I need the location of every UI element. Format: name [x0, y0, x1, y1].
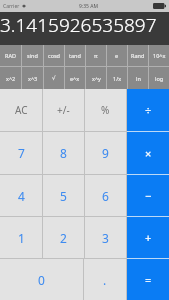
button[interactable]: Add [127, 217, 169, 258]
button[interactable]: % [85, 89, 126, 131]
staticText: e^x [70, 75, 80, 82]
button[interactable]: π [86, 45, 106, 66]
button[interactable]: x^y [86, 67, 106, 89]
staticText: − [145, 188, 152, 203]
staticText: √ [52, 75, 56, 81]
staticText: tand [69, 52, 81, 59]
staticText: 3.14159265358979 [0, 12, 166, 45]
staticText: ÷ [145, 103, 152, 118]
button[interactable]: Divide [127, 89, 169, 131]
button[interactable]: Subtract [127, 175, 169, 216]
button[interactable]: 2 [43, 217, 84, 258]
button[interactable]: 8 [43, 132, 84, 174]
staticText: 9 [102, 145, 109, 161]
button[interactable]: Multiply [127, 132, 169, 174]
button[interactable]: cosd [44, 45, 64, 66]
button[interactable]: log [149, 67, 169, 89]
staticText: 9:35 AM [79, 3, 99, 10]
staticText: RAD [5, 52, 16, 59]
button[interactable]: Rand [128, 45, 148, 66]
button[interactable]: 9 [85, 132, 126, 174]
button[interactable]: x^2 [0, 67, 21, 89]
staticText: 7 [18, 145, 25, 161]
button[interactable]: 4 [0, 175, 42, 216]
staticText: π [94, 52, 98, 59]
staticText: . [103, 272, 107, 288]
button[interactable]: 6 [85, 175, 126, 216]
staticText: sind [27, 52, 38, 59]
staticText: % [101, 103, 110, 117]
staticText: 8 [60, 145, 67, 161]
staticText: 1 [18, 230, 25, 246]
staticText: 1/x [113, 75, 122, 82]
staticText: x^3 [28, 75, 38, 82]
button[interactable]: √ [44, 67, 64, 89]
button[interactable]: 1/x [107, 67, 127, 89]
button[interactable]: 1 [0, 217, 42, 258]
staticText: 5 [60, 188, 67, 204]
button[interactable]: +/- [43, 89, 84, 131]
button[interactable]: e [107, 45, 127, 66]
staticText: e [115, 52, 119, 59]
staticText: x^y [92, 75, 101, 82]
button[interactable]: sind [22, 45, 43, 66]
staticText: 6 [102, 188, 109, 204]
button[interactable]: tand [65, 45, 85, 66]
staticText: Rand [131, 52, 145, 59]
button[interactable]: RAD [0, 45, 21, 66]
staticText: cosd [48, 52, 60, 59]
staticText: ln [136, 75, 141, 82]
staticText: log [155, 75, 164, 82]
button[interactable]: x^3 [22, 67, 43, 89]
staticText: 2 [60, 230, 67, 246]
button[interactable]: 5 [43, 175, 84, 216]
staticText: = [145, 272, 152, 287]
staticText: AC [15, 103, 28, 117]
button[interactable]: . [84, 259, 126, 300]
button[interactable]: 3 [85, 217, 126, 258]
button[interactable]: 0 [0, 259, 83, 300]
button[interactable]: AC [0, 89, 42, 131]
staticText: 0 [38, 272, 45, 288]
staticText: 3 [102, 230, 109, 246]
button[interactable]: 10^x [149, 45, 169, 66]
button[interactable]: ln [128, 67, 148, 89]
staticText: 4 [18, 188, 25, 204]
staticText: × [145, 146, 152, 161]
staticText: Carrier [3, 3, 20, 10]
staticText: 10^x [153, 52, 166, 59]
staticText: + [145, 230, 152, 245]
button[interactable]: Equals [127, 259, 169, 300]
staticText: x^2 [6, 75, 16, 82]
button[interactable]: 7 [0, 132, 42, 174]
button[interactable]: e^x [65, 67, 85, 89]
staticText: +/- [57, 103, 70, 117]
